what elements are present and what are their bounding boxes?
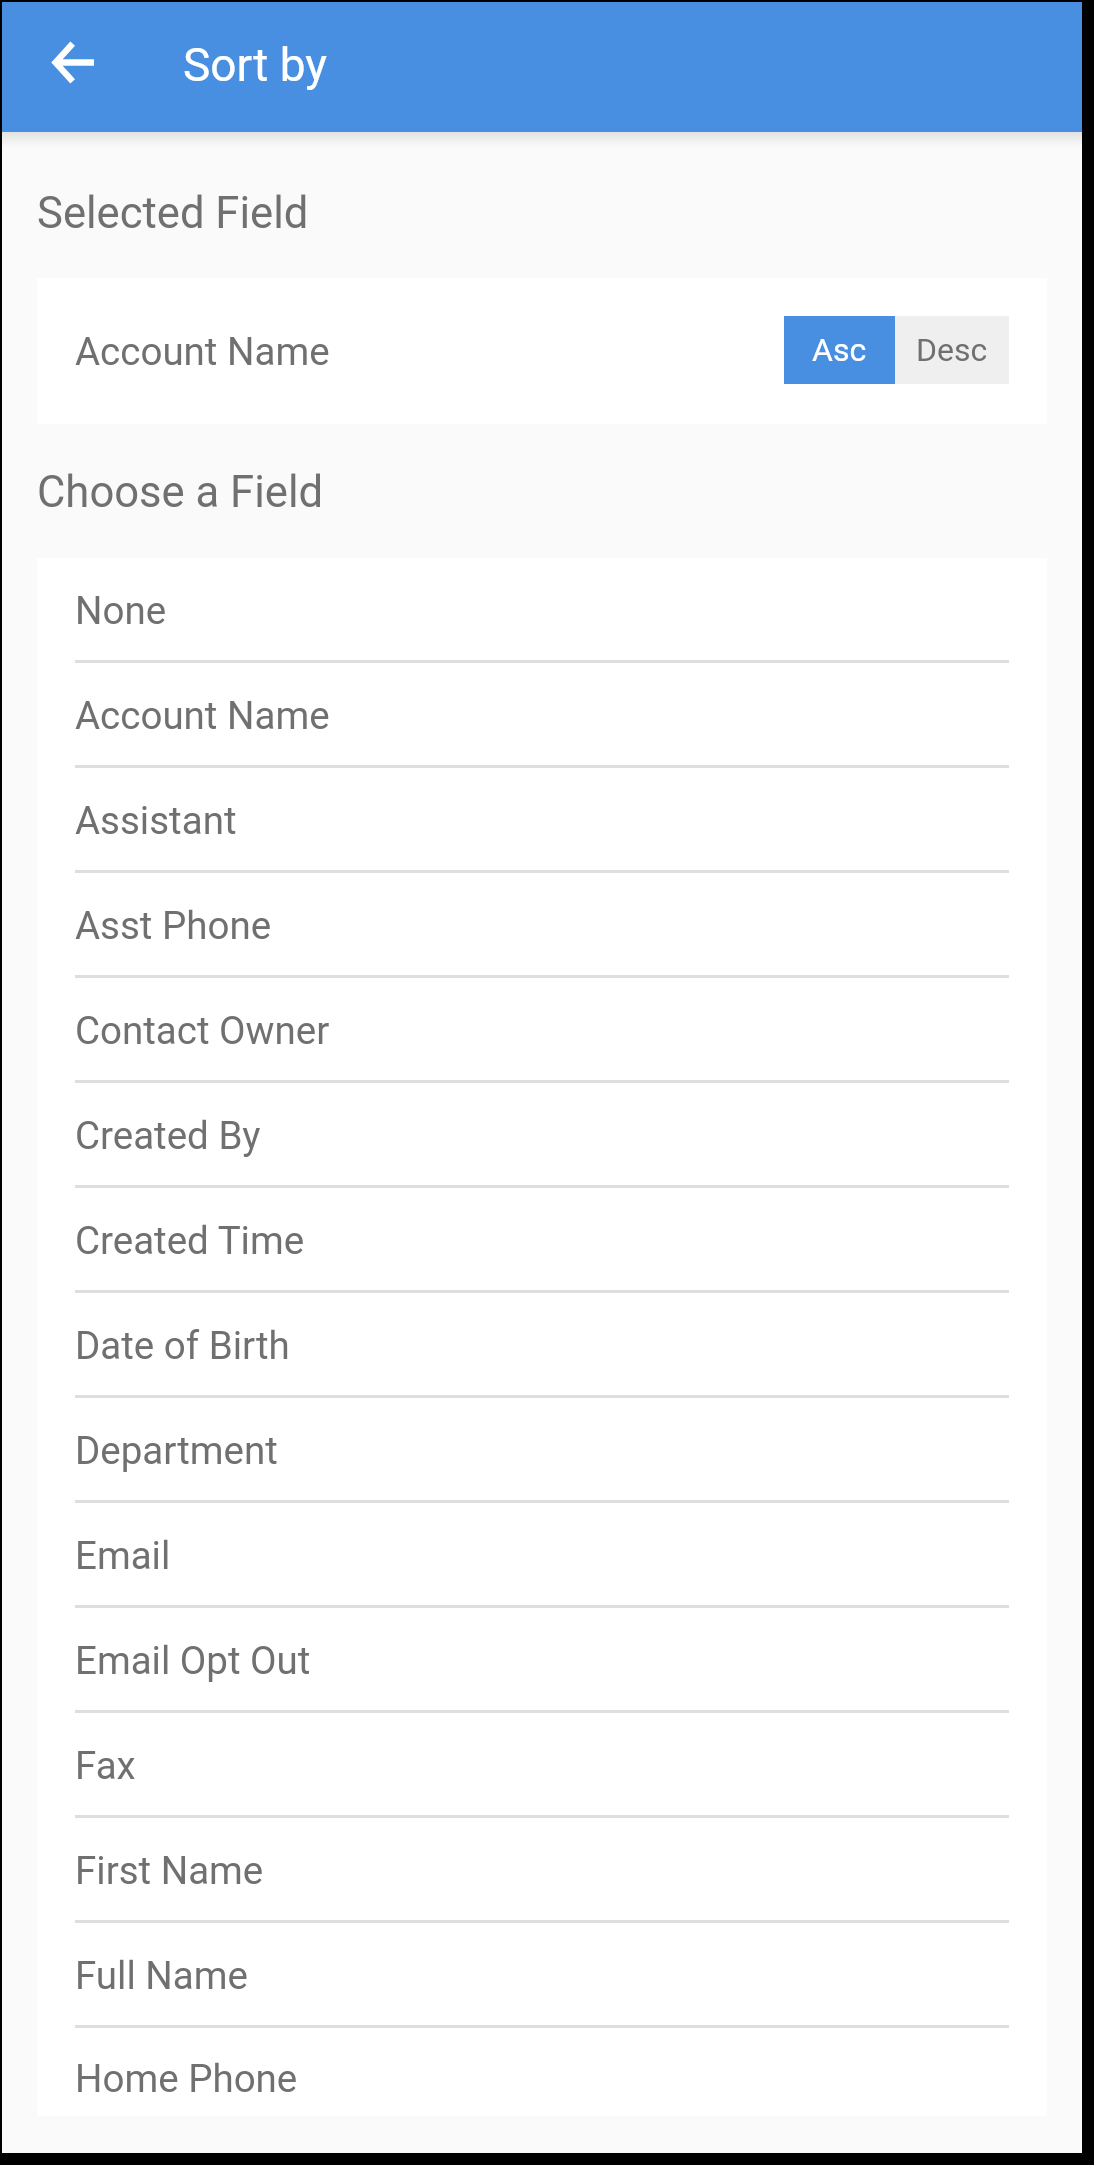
- staticText: None: [75, 588, 167, 633]
- staticText: Desc: [916, 331, 988, 369]
- button[interactable]: Email: [37, 1503, 1047, 1608]
- button[interactable]: Full Name: [37, 1923, 1047, 2028]
- button[interactable]: Department: [37, 1398, 1047, 1503]
- button[interactable]: First Name: [37, 1818, 1047, 1923]
- staticText: Selected Field: [37, 188, 309, 239]
- staticText: Asst Phone: [75, 903, 272, 948]
- staticText: Account Name: [75, 329, 330, 374]
- staticText: Contact Owner: [75, 1008, 330, 1053]
- staticText: Account Name: [75, 693, 330, 738]
- button[interactable]: Fax: [37, 1713, 1047, 1818]
- staticText: Fax: [75, 1743, 136, 1788]
- button[interactable]: Desc: [895, 316, 1009, 384]
- staticText: Created Time: [75, 1218, 305, 1263]
- button[interactable]: Asst Phone: [37, 873, 1047, 978]
- button[interactable]: Home Phone: [37, 2028, 1047, 2116]
- staticText: Created By: [75, 1113, 261, 1158]
- staticText: Choose a Field: [37, 467, 324, 518]
- button[interactable]: Date of Birth: [37, 1293, 1047, 1398]
- button[interactable]: Asc: [784, 316, 895, 384]
- staticText: Sort by: [183, 38, 328, 92]
- staticText: Date of Birth: [75, 1323, 290, 1368]
- staticText: Email Opt Out: [75, 1638, 311, 1683]
- staticText: Full Name: [75, 1953, 248, 1998]
- staticText: Assistant: [75, 798, 237, 843]
- staticText: Home Phone: [75, 2056, 298, 2101]
- staticText: Department: [75, 1428, 278, 1473]
- button[interactable]: Email Opt Out: [37, 1608, 1047, 1713]
- button[interactable]: Account Name: [37, 663, 1047, 768]
- button[interactable]: Created By: [37, 1083, 1047, 1188]
- staticText: Asc: [812, 331, 867, 369]
- staticText: First Name: [75, 1848, 264, 1893]
- button[interactable]: Back: [29, 18, 117, 106]
- button[interactable]: Assistant: [37, 768, 1047, 873]
- staticText: Email: [75, 1533, 171, 1578]
- button[interactable]: Contact Owner: [37, 978, 1047, 1083]
- button[interactable]: None: [37, 558, 1047, 663]
- button[interactable]: Account Name: [37, 278, 1047, 424]
- button[interactable]: Created Time: [37, 1188, 1047, 1293]
